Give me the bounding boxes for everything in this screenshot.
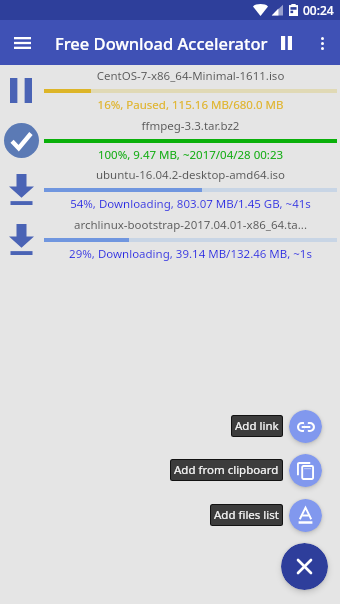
button[interactable]: Add link (289, 410, 322, 443)
button[interactable]: ffmpeg-3.3.tar.bz2 (0, 115, 340, 165)
button[interactable]: CentOS-7-x86_64-Minimal-1611.iso (0, 65, 340, 115)
staticText: archlinux-bootstrap-2017.04.01-x86_64.ta… (44, 217, 337, 233)
button[interactable]: More options (304, 25, 340, 61)
staticText: 29%, Downloading, 39.14 MB/132.46 MB, ~1… (44, 246, 337, 262)
button[interactable]: Add files list (289, 499, 322, 532)
button[interactable]: ubuntu-16.04.2-desktop-amd64.iso (0, 164, 340, 214)
button[interactable]: Pause all downloads (268, 25, 304, 61)
button[interactable]: Close add menu (281, 543, 328, 590)
button[interactable]: archlinux-bootstrap-2017.04.01-x86_64.ta… (0, 214, 340, 264)
staticText: Add from clipboard (174, 462, 279, 478)
button[interactable]: Navigation menu (0, 20, 45, 65)
button[interactable]: Add files list (210, 504, 283, 526)
staticText: 54%, Downloading, 803.07 MB/1.45 GB, ~41… (44, 196, 337, 212)
button[interactable]: Add link (231, 415, 283, 437)
staticText: 00:24 (303, 2, 334, 18)
staticText: ffmpeg-3.3.tar.bz2 (44, 118, 337, 134)
staticText: ubuntu-16.04.2-desktop-amd64.iso (44, 167, 337, 183)
staticText: CentOS-7-x86_64-Minimal-1611.iso (44, 68, 337, 84)
staticText: Free Download Accelerator (55, 32, 268, 54)
button[interactable]: Add from clipboard (289, 454, 322, 487)
staticText: Add files list (214, 507, 279, 523)
staticText: 16%, Paused, 115.16 MB/680.0 MB (44, 97, 337, 113)
button[interactable]: Add from clipboard (170, 459, 283, 481)
staticText: Add link (235, 418, 279, 434)
staticText: 100%, 9.47 MB, ~2017/04/28 00:23 (44, 147, 337, 163)
